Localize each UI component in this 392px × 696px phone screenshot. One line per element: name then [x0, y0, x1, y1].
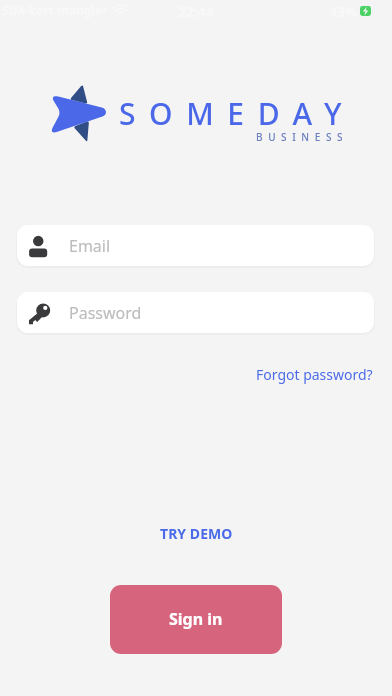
- button[interactable]: Sign in: [110, 585, 282, 654]
- button[interactable]: Email: [17, 225, 374, 266]
- staticText: BUSINESS: [256, 130, 349, 144]
- staticText: Email: [69, 235, 111, 257]
- button[interactable]: Password: [17, 292, 374, 333]
- staticText: Forgot password?: [256, 365, 373, 384]
- staticText: Password: [69, 302, 142, 324]
- button[interactable]: Forgot password?: [248, 359, 381, 390]
- staticText: TRY DEMO: [160, 524, 233, 543]
- staticText: Sign in: [169, 608, 223, 630]
- other: Battery charging: [360, 6, 371, 16]
- staticText: SOMEDAY: [119, 93, 356, 134]
- button[interactable]: TRY DEMO: [148, 516, 245, 551]
